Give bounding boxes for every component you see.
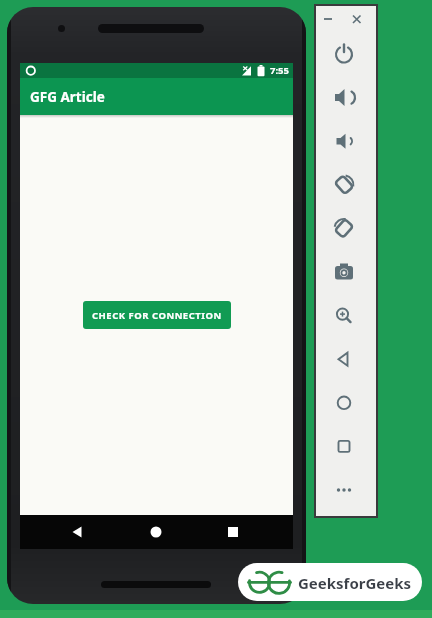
button[interactable]: GeeksforGeeks — [238, 563, 422, 601]
button[interactable] — [227, 526, 239, 538]
button[interactable] — [150, 526, 162, 538]
staticText: GFG Article — [30, 88, 105, 106]
button[interactable] — [71, 526, 83, 538]
button[interactable]: CHECK FOR CONNECTION — [83, 301, 231, 329]
staticText: GeeksforGeeks — [298, 573, 412, 593]
button[interactable]: GFG Article — [20, 78, 293, 115]
staticText: CHECK FOR CONNECTION — [92, 309, 222, 322]
staticText: 7:55 — [270, 64, 289, 77]
